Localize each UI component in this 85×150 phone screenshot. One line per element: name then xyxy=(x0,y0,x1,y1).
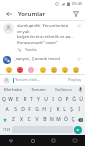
button[interactable]: ?123 xyxy=(2,125,11,134)
staticText: O xyxy=(58,96,62,103)
staticText: W xyxy=(8,96,13,103)
button[interactable]: Yorum ekle... xyxy=(0,75,85,85)
button[interactable]: M xyxy=(55,115,62,124)
button[interactable]: P xyxy=(63,95,70,104)
button[interactable]: V xyxy=(33,115,41,124)
button[interactable]: Send xyxy=(74,126,82,134)
staticText: Ü xyxy=(79,96,83,103)
button[interactable]: D xyxy=(19,105,26,114)
button[interactable]: Ş xyxy=(68,105,75,114)
staticText: 09:45 xyxy=(72,1,83,6)
staticText: C xyxy=(27,116,31,123)
button[interactable]: F xyxy=(26,105,33,114)
button[interactable]: flower xyxy=(27,66,35,74)
button[interactable]: Tamam xyxy=(26,85,51,94)
button[interactable]: A xyxy=(3,105,11,114)
staticText: 1g xyxy=(17,47,22,52)
button[interactable]: Back xyxy=(0,135,22,146)
staticText: Tamam xyxy=(31,87,46,93)
button[interactable]: U xyxy=(42,95,49,104)
button[interactable]: Yanıtla xyxy=(25,47,37,52)
staticText: R xyxy=(23,96,27,103)
staticText: Merhaba xyxy=(4,87,22,93)
button[interactable]: I xyxy=(49,95,56,104)
staticText: E xyxy=(16,96,19,103)
button[interactable]: Q xyxy=(1,95,7,104)
button[interactable]: clap xyxy=(50,66,58,74)
staticText: I xyxy=(52,96,54,103)
staticText: Yorum ekle... xyxy=(15,77,68,83)
staticText: V xyxy=(35,116,39,123)
button[interactable]: W xyxy=(7,95,14,104)
staticText: J xyxy=(50,106,52,113)
button[interactable]: T xyxy=(28,95,35,104)
staticText: X xyxy=(20,116,23,123)
button[interactable]: Paylaş xyxy=(68,77,82,83)
button[interactable]: Home xyxy=(22,135,43,146)
staticText: Ö xyxy=(64,116,68,123)
button[interactable]: Back xyxy=(4,9,14,19)
staticText: dumlupinlik Yorumlarinizi ve yuk xyxy=(17,23,74,34)
staticText: Ğ xyxy=(72,96,76,103)
staticText: _sanyisi_ Çooook mood xyxy=(14,56,74,62)
button[interactable]: Recents xyxy=(43,135,64,146)
staticText: G xyxy=(35,106,39,113)
button[interactable]: B xyxy=(41,115,48,124)
button[interactable]: Ğ xyxy=(70,95,77,104)
button[interactable]: Voice input xyxy=(76,85,85,94)
staticText: beğenilerinizi etkinlik ve paylaşım vide… xyxy=(17,34,74,40)
button[interactable]: S xyxy=(11,105,19,114)
staticText: U xyxy=(44,96,48,103)
button[interactable]: Like xyxy=(76,23,82,29)
button[interactable]: fire xyxy=(16,66,24,74)
button[interactable]: Hide keyboard xyxy=(64,135,85,146)
button[interactable]: cry xyxy=(72,66,80,74)
button[interactable]: R xyxy=(21,95,28,104)
staticText: L xyxy=(63,106,66,113)
staticText: ?123 xyxy=(3,127,11,132)
button[interactable]: Y xyxy=(35,95,42,104)
button[interactable]: dumlupinlik Yorumlarinizi ve yuk xyxy=(0,21,85,54)
staticText: H xyxy=(42,106,46,113)
button[interactable]: wow xyxy=(61,66,69,74)
button[interactable]: heart xyxy=(5,66,13,74)
staticText: K xyxy=(56,106,60,113)
button[interactable]: Kullanıcı xyxy=(51,85,76,94)
button[interactable]: O xyxy=(56,95,63,104)
button[interactable]: smile xyxy=(39,66,47,74)
button[interactable]: E xyxy=(14,95,21,104)
staticText: B xyxy=(43,116,47,123)
button[interactable]: Z xyxy=(9,115,17,124)
staticText: Kullanıcı xyxy=(55,87,72,93)
button[interactable]: Ü xyxy=(77,95,84,104)
button[interactable]: X xyxy=(17,115,25,124)
button[interactable]: Shift xyxy=(1,115,9,124)
staticText: N xyxy=(50,116,54,123)
staticText: P xyxy=(65,96,69,103)
button[interactable]: Backspace xyxy=(76,115,84,124)
staticText: Yorumlar xyxy=(18,10,46,18)
button[interactable]: Ç xyxy=(69,115,76,124)
staticText: Konusunuzdi" cover" xyxy=(17,40,59,46)
button[interactable]: Ö xyxy=(62,115,69,124)
button[interactable]: Send xyxy=(71,9,81,19)
staticText: Q xyxy=(2,96,6,103)
button[interactable]: İ xyxy=(75,105,82,114)
button[interactable]: K xyxy=(54,105,61,114)
staticText: İ xyxy=(78,106,80,113)
button[interactable]: J xyxy=(47,105,54,114)
staticText: Ş xyxy=(70,106,73,113)
button[interactable]: H xyxy=(40,105,47,114)
staticText: Z xyxy=(12,116,15,123)
staticText: T xyxy=(30,96,33,103)
button[interactable]: C xyxy=(25,115,33,124)
button[interactable]: Like xyxy=(76,56,82,62)
button[interactable]: L xyxy=(61,105,68,114)
button[interactable]: _sanyisi_ Çooook mood xyxy=(0,55,85,65)
button[interactable]: Merhaba xyxy=(0,85,26,94)
staticText: S xyxy=(14,106,17,113)
staticText: A xyxy=(5,106,9,113)
button[interactable]: G xyxy=(33,105,40,114)
button[interactable]: N xyxy=(48,115,55,124)
